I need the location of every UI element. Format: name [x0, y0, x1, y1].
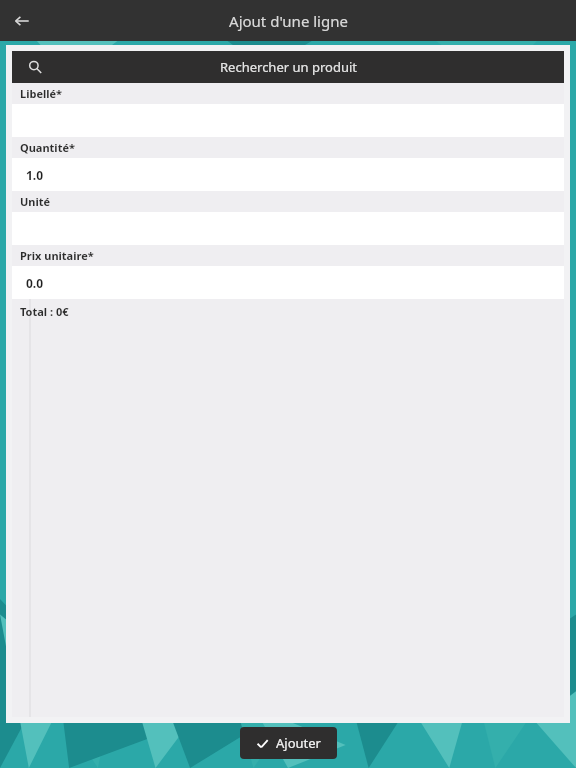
staticText: Libellé* — [20, 86, 63, 101]
staticText: Prix unitaire* — [20, 248, 94, 263]
button[interactable]: Back — [0, 0, 44, 41]
staticText: 0.0 — [26, 275, 44, 291]
button[interactable]: 1.0 — [12, 158, 564, 191]
staticText: 1.0 — [26, 167, 44, 183]
button[interactable]: Rechercher un produit — [12, 51, 564, 83]
button[interactable]: 0.0 — [12, 266, 564, 299]
staticText: Total : 0€ — [20, 304, 69, 319]
staticText: Ajout d'une ligne — [229, 11, 348, 31]
staticText: Rechercher un produit — [220, 58, 357, 76]
staticText: Unité — [20, 194, 51, 209]
button[interactable]: Ajouter — [240, 727, 337, 759]
staticText: Ajouter — [276, 734, 321, 752]
staticText: Quantité* — [20, 140, 75, 155]
